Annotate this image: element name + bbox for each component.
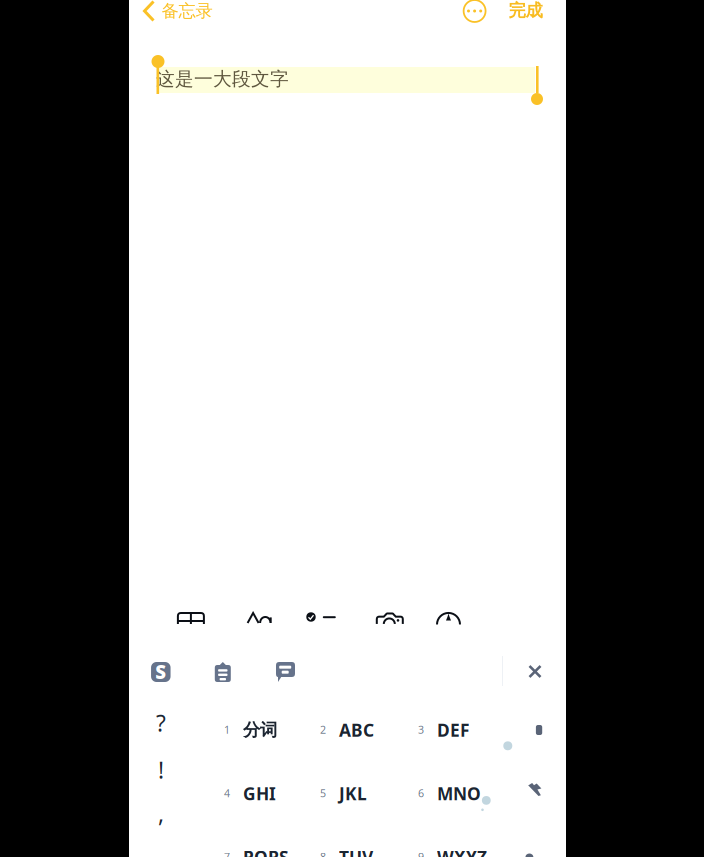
button[interactable]: Close keyboard bbox=[520, 656, 550, 686]
button[interactable]: 4 bbox=[224, 765, 320, 821]
staticText: 完成 bbox=[508, 0, 542, 21]
staticText: 这是一大段文字 bbox=[156, 67, 289, 90]
button[interactable]: Clipboard bbox=[208, 657, 238, 687]
staticText: 7 bbox=[224, 849, 230, 857]
staticText: JKL bbox=[339, 782, 367, 805]
staticText: PQRS bbox=[243, 845, 289, 857]
button[interactable]: Text format bbox=[246, 597, 290, 623]
staticText: GHI bbox=[243, 782, 276, 805]
button[interactable]: Camera bbox=[368, 598, 412, 624]
button[interactable]: 5 bbox=[320, 765, 416, 821]
button[interactable]: More bbox=[458, 0, 492, 26]
button[interactable]: Table bbox=[169, 594, 213, 624]
staticText: 8 bbox=[320, 849, 326, 857]
button[interactable]: 1 bbox=[224, 702, 320, 758]
button[interactable]: 8 bbox=[320, 829, 416, 857]
button[interactable]: ? bbox=[141, 701, 181, 745]
staticText: 4 bbox=[224, 786, 230, 800]
staticText: MNO bbox=[437, 782, 481, 805]
button[interactable]: , bbox=[141, 791, 181, 835]
staticText: 9 bbox=[418, 849, 424, 857]
staticText: 1 bbox=[224, 722, 230, 737]
staticText: , bbox=[158, 798, 164, 828]
button[interactable]: 3 bbox=[418, 702, 514, 758]
button[interactable]: Sogou keyboard bbox=[146, 657, 176, 687]
button[interactable]: 2 bbox=[320, 702, 416, 758]
staticText: 5 bbox=[320, 786, 326, 800]
staticText: ABC bbox=[339, 718, 374, 741]
staticText: 分词 bbox=[243, 719, 277, 741]
staticText: 备忘录 bbox=[161, 0, 212, 22]
button[interactable]: Markup bbox=[426, 598, 470, 624]
button[interactable]: ! bbox=[141, 748, 181, 792]
staticText: 2 bbox=[320, 722, 326, 737]
button[interactable]: 9 bbox=[418, 829, 514, 857]
staticText: WXYZ bbox=[437, 845, 487, 857]
button[interactable]: 6 bbox=[418, 765, 514, 821]
staticText: DEF bbox=[437, 718, 470, 741]
staticText: ! bbox=[158, 755, 164, 785]
button[interactable]: 7 bbox=[224, 829, 320, 857]
staticText: TUV bbox=[339, 845, 373, 857]
button[interactable]: 备忘录 bbox=[144, 0, 230, 26]
button[interactable]: Checklist bbox=[304, 596, 348, 622]
staticText: ? bbox=[156, 708, 166, 738]
staticText: 6 bbox=[418, 786, 424, 800]
staticText: S bbox=[155, 659, 166, 684]
staticText: 3 bbox=[418, 722, 424, 737]
button[interactable]: Messages bbox=[270, 657, 300, 687]
button[interactable]: 完成 bbox=[497, 0, 553, 25]
